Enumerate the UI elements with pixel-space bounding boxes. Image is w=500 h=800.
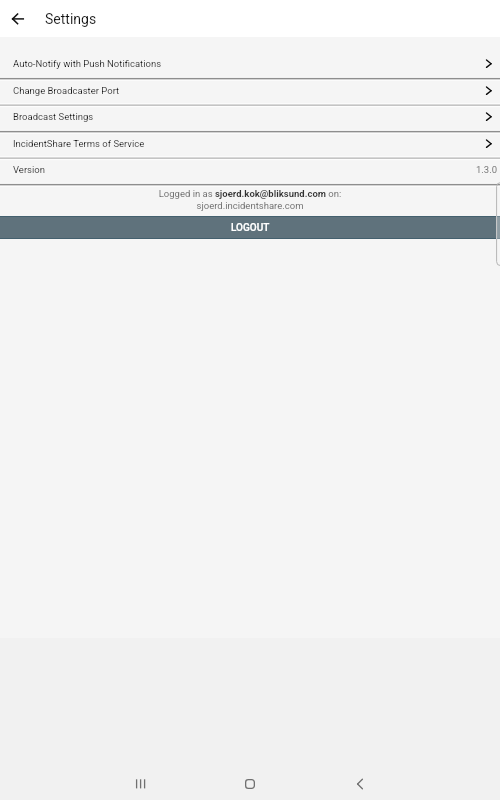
button[interactable]: Recent apps (127, 770, 155, 798)
staticText: IncidentShare Terms of Service (13, 138, 145, 149)
staticText: Change Broadcaster Port (13, 85, 120, 96)
staticText: 1.3.0 (476, 164, 498, 175)
button[interactable]: Change Broadcaster Port (0, 79, 500, 101)
button[interactable]: Auto-Notify with Push Notifications (0, 52, 500, 74)
staticText: Auto-Notify with Push Notifications (13, 58, 162, 69)
staticText: Settings (45, 11, 97, 27)
staticText: LOGOUT (231, 222, 270, 234)
staticText: Broadcast Settings (13, 111, 94, 122)
button[interactable]: Back (346, 770, 374, 798)
button[interactable]: Home (236, 770, 264, 798)
button[interactable]: LOGOUT (0, 216, 500, 239)
button[interactable]: IncidentShare Terms of Service (0, 132, 500, 154)
button[interactable]: Back (0, 2, 34, 36)
staticText: Logged in as sjoerd.kok@bliksund.com on:… (0, 188, 500, 211)
button[interactable]: Broadcast Settings (0, 105, 500, 127)
staticText: Version (13, 164, 45, 175)
